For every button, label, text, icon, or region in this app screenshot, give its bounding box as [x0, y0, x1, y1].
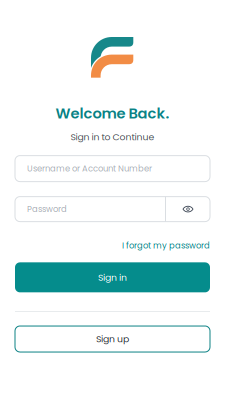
staticText: Password — [27, 203, 67, 215]
button[interactable]: Sign up — [15, 326, 210, 352]
button[interactable]: I forgot my password — [122, 240, 210, 251]
staticText: I forgot my password — [122, 240, 210, 251]
staticText: Sign up — [96, 332, 129, 346]
staticText: Username or Account Number — [27, 163, 152, 174]
staticText: Sign in to Continue — [70, 130, 154, 144]
button[interactable]: Show password — [166, 197, 210, 222]
staticText: Welcome Back. — [55, 103, 169, 123]
staticText: Sign in — [98, 271, 127, 284]
button[interactable]: Sign in — [15, 262, 210, 292]
